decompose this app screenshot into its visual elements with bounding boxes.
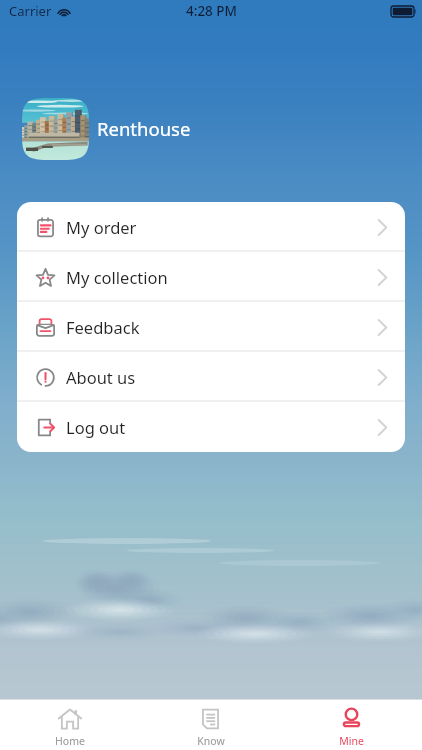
staticText: Log out xyxy=(66,416,126,438)
button[interactable]: Log out xyxy=(17,402,405,452)
button[interactable] xyxy=(22,98,89,160)
staticText: Home xyxy=(55,734,85,748)
staticText: Mine xyxy=(339,734,364,748)
staticText: 4:28 PM xyxy=(186,2,237,20)
staticText: Feedback xyxy=(66,316,140,338)
button[interactable]: Feedback xyxy=(17,302,405,352)
button[interactable]: Know xyxy=(140,700,281,750)
staticText: Know xyxy=(197,734,225,748)
staticText: Carrier xyxy=(9,2,52,20)
button[interactable]: Mine xyxy=(281,700,422,750)
staticText: Renthouse xyxy=(97,116,191,141)
staticText: About us xyxy=(66,366,136,388)
button[interactable]: About us xyxy=(17,352,405,402)
button[interactable]: My collection xyxy=(17,252,405,302)
button[interactable]: My order xyxy=(17,202,405,252)
staticText: My order xyxy=(66,216,137,238)
button[interactable]: Home xyxy=(0,700,140,750)
staticText: My collection xyxy=(66,266,168,288)
